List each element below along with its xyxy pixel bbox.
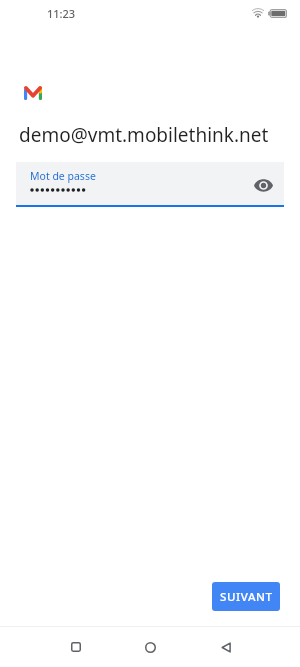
button[interactable]: Home [130,627,170,667]
button[interactable]: Recents [56,627,96,667]
button[interactable]: SUIVANT [212,582,280,611]
button[interactable]: Mot de passe [16,162,284,205]
staticText: 11:23 [47,6,76,21]
button[interactable]: Afficher le mot de passe [241,164,285,207]
staticText: SUIVANT [220,589,273,605]
staticText: Mot de passe [30,169,96,183]
button[interactable]: Back [206,627,246,667]
staticText: demo@vmt.mobilethink.net [19,122,269,148]
